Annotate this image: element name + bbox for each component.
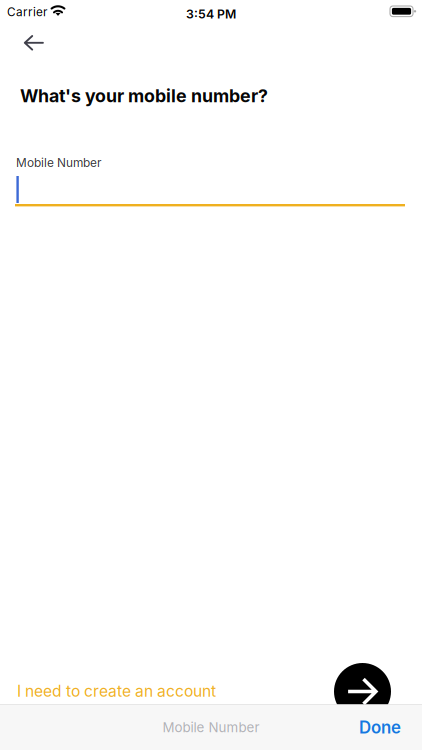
staticText: Mobile Number bbox=[16, 155, 101, 170]
staticText: Done bbox=[359, 717, 401, 737]
button[interactable]: Back bbox=[12, 23, 56, 63]
button[interactable]: Done bbox=[340, 705, 420, 750]
button[interactable]: I need to create an account bbox=[17, 677, 216, 705]
staticText: What's your mobile number? bbox=[20, 85, 268, 106]
button[interactable]: Continue bbox=[334, 663, 391, 720]
staticText: I need to create an account bbox=[17, 682, 216, 700]
staticText: 3:54 PM bbox=[186, 7, 236, 21]
staticText: Carrier bbox=[7, 5, 47, 19]
staticText: Mobile Number bbox=[162, 719, 259, 735]
